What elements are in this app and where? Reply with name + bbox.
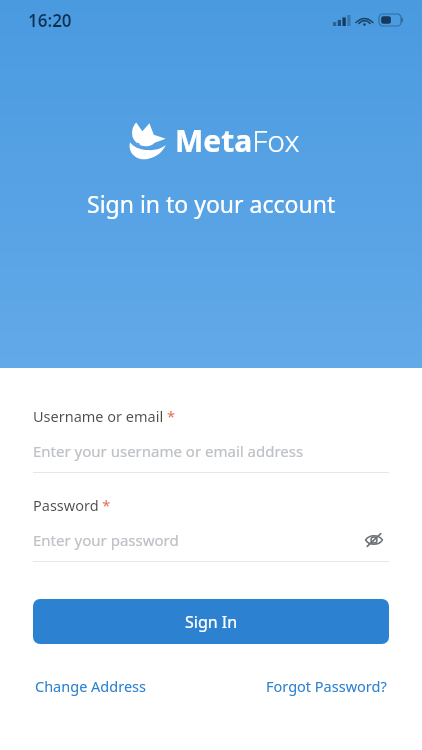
staticText: MetaFox — [175, 120, 300, 161]
staticText: Sign In — [185, 611, 238, 633]
staticText: Password * — [33, 495, 111, 515]
staticText: Forgot Password? — [266, 676, 387, 696]
staticText: Sign in to your account — [87, 188, 336, 219]
staticText: Change Address — [35, 676, 146, 696]
button[interactable]: Enter your username or email address — [33, 436, 389, 466]
button[interactable]: Sign In — [33, 599, 389, 644]
button[interactable]: Show password — [359, 525, 389, 555]
staticText: Username or email * — [33, 406, 175, 426]
button[interactable]: Enter your password — [33, 525, 389, 555]
staticText: 16:20 — [28, 9, 72, 32]
staticText: Enter your username or email address — [33, 441, 304, 461]
staticText: Enter your password — [33, 530, 179, 550]
button[interactable]: Forgot Password? — [264, 672, 389, 700]
button[interactable]: Change Address — [33, 672, 148, 700]
